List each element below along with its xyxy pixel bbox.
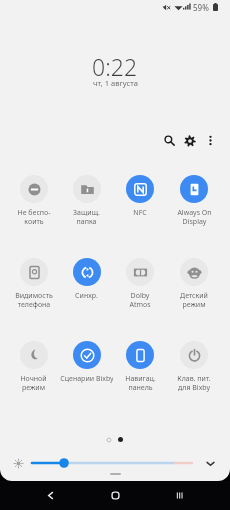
button[interactable]: Brightness: [9, 454, 28, 472]
button[interactable]: Brightness slider: [0, 456, 230, 470]
button[interactable]: Не бecпo- кoить: [7, 175, 60, 226]
button[interactable]: Expand: [202, 455, 218, 471]
staticText: 59%: [193, 2, 209, 13]
staticText: Видимость телефона: [15, 291, 53, 309]
staticText: Защищ. папка: [73, 208, 100, 226]
button[interactable]: Settings: [179, 130, 200, 151]
button[interactable]: Search: [159, 130, 180, 151]
staticText: Dolby Atmos: [129, 291, 151, 309]
button[interactable]: Back: [40, 485, 61, 506]
staticText: чт, 1 августа: [93, 78, 138, 88]
button[interactable]: Клав. пит. для Bixby: [167, 341, 221, 392]
button[interactable]: Dolby Atmos: [113, 258, 167, 309]
staticText: Детский режим: [180, 291, 208, 309]
button[interactable]: Детский режим: [167, 258, 221, 309]
staticText: Клав. пит. для Bixby: [177, 374, 211, 392]
staticText: Ночной режим: [20, 374, 47, 392]
button[interactable]: Home: [105, 485, 126, 506]
button[interactable]: Ночной режим: [7, 341, 60, 392]
button[interactable]: Always On Display: [167, 175, 221, 226]
staticText: Синхр.: [75, 291, 98, 301]
button[interactable]: NFC: [113, 175, 167, 218]
button[interactable]: Навигац. панель: [113, 341, 167, 392]
button[interactable]: Сценарии Bixby: [60, 341, 113, 384]
staticText: Сценарии Bixby: [60, 374, 113, 384]
button[interactable]: Recents: [169, 485, 190, 506]
staticText: 0:22: [92, 51, 138, 82]
staticText: Навигац. панель: [125, 374, 156, 392]
button[interactable]: More options: [200, 130, 221, 151]
staticText: NFC: [133, 208, 147, 218]
button[interactable]: Защищ. папка: [60, 175, 113, 226]
staticText: Не бecпo- кoить: [17, 208, 51, 226]
button[interactable]: Видимость телефона: [7, 258, 60, 309]
staticText: Always On Display: [177, 208, 212, 226]
button[interactable]: Синхр.: [60, 258, 113, 301]
